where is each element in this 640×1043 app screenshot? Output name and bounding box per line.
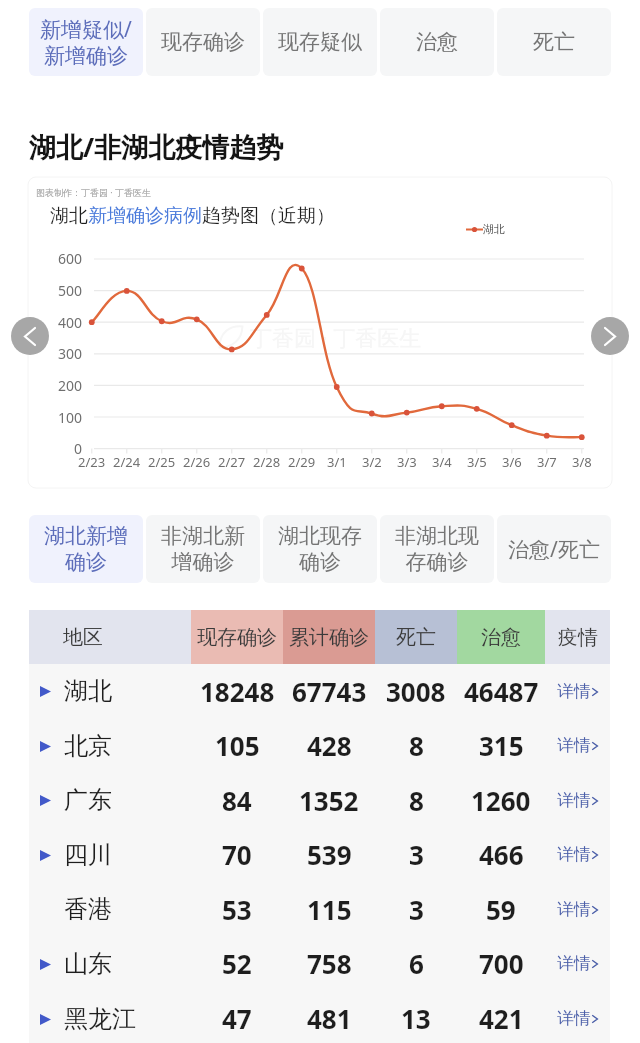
- button[interactable]: 现存疑似: [263, 8, 377, 76]
- staticText: 治愈/死亡: [508, 535, 600, 564]
- staticText: 疫情: [558, 625, 598, 650]
- staticText: 黑龙江: [64, 1004, 136, 1034]
- staticText: 3/1: [327, 453, 347, 471]
- staticText: 治愈: [416, 29, 458, 55]
- button[interactable]: 非湖北现 存确诊: [380, 515, 494, 583]
- staticText: 山东: [64, 949, 112, 979]
- staticText: 2/23: [78, 453, 106, 471]
- button[interactable]: 死亡: [497, 8, 611, 76]
- staticText: 2/25: [148, 453, 176, 471]
- staticText: 6: [409, 946, 424, 981]
- staticText: 3/7: [537, 453, 557, 471]
- button[interactable]: 黑龙江: [29, 991, 610, 1043]
- staticText: 3/4: [432, 453, 452, 471]
- staticText: 广东: [64, 785, 112, 815]
- button[interactable]: 湖北现存 确诊: [263, 515, 377, 583]
- button[interactable]: 香港: [29, 882, 610, 936]
- staticText: 46487: [464, 674, 539, 709]
- button[interactable]: 治愈: [380, 8, 494, 76]
- staticText: 758: [307, 946, 352, 981]
- staticText: 详情: [557, 1008, 591, 1029]
- staticText: 详情: [557, 899, 591, 920]
- staticText: 18248: [200, 674, 275, 709]
- staticText: 湖北现存 确诊: [278, 523, 362, 576]
- staticText: 香港: [64, 894, 112, 924]
- staticText: 湖北新增确诊病例趋势图（近期）: [50, 204, 335, 228]
- staticText: 1352: [299, 783, 359, 818]
- button[interactable]: 治愈/死亡: [497, 515, 611, 583]
- staticText: 四川: [64, 840, 112, 870]
- button[interactable]: 山东: [29, 936, 610, 991]
- staticText: 13: [401, 1001, 431, 1036]
- staticText: 现存疑似: [278, 29, 362, 55]
- staticText: 详情: [557, 790, 591, 811]
- staticText: 428: [307, 728, 352, 763]
- staticText: 315: [479, 728, 524, 763]
- button[interactable]: 湖北: [29, 664, 610, 718]
- staticText: 详情: [557, 953, 591, 974]
- staticText: 300: [58, 344, 83, 363]
- staticText: 421: [479, 1001, 524, 1036]
- button[interactable]: 北京: [29, 718, 610, 773]
- staticText: 丁香园 · 丁香医生: [250, 322, 422, 352]
- staticText: 53: [222, 892, 252, 927]
- staticText: 2/29: [288, 453, 316, 471]
- staticText: 地区: [63, 625, 103, 650]
- staticText: 105: [215, 728, 260, 763]
- staticText: 600: [58, 249, 83, 268]
- staticText: 115: [307, 892, 352, 927]
- staticText: 0: [74, 439, 83, 458]
- staticText: 北京: [64, 731, 112, 761]
- staticText: 8: [409, 783, 424, 818]
- staticText: 现存确诊: [197, 625, 277, 650]
- staticText: 100: [58, 408, 83, 427]
- staticText: 481: [307, 1001, 352, 1036]
- staticText: 400: [58, 313, 83, 332]
- staticText: 累计确诊: [289, 625, 369, 650]
- staticText: 详情: [557, 681, 591, 702]
- staticText: 2/28: [253, 453, 281, 471]
- staticText: 47: [222, 1001, 252, 1036]
- staticText: 8: [409, 728, 424, 763]
- staticText: 67743: [292, 674, 367, 709]
- button[interactable]: 四川: [29, 827, 610, 882]
- staticText: 466: [479, 837, 524, 872]
- button[interactable]: 湖北新增 确诊: [29, 515, 143, 583]
- staticText: 70: [222, 837, 252, 872]
- staticText: 详情: [557, 735, 591, 756]
- staticText: 湖北: [64, 676, 112, 706]
- staticText: 现存确诊: [161, 29, 245, 55]
- button[interactable]: 新增疑似/ 新增确诊: [29, 8, 143, 76]
- button[interactable]: 非湖北新 增确诊: [146, 515, 260, 583]
- staticText: 3/6: [502, 453, 522, 471]
- staticText: 500: [58, 281, 83, 300]
- staticText: 3/2: [362, 453, 382, 471]
- staticText: 非湖北新 增确诊: [161, 523, 245, 576]
- staticText: 湖北/非湖北疫情趋势: [29, 128, 284, 165]
- button[interactable]: 现存确诊: [146, 8, 260, 76]
- staticText: 200: [58, 376, 83, 395]
- staticText: 3: [409, 837, 424, 872]
- button[interactable]: Next chart: [591, 317, 629, 355]
- staticText: 59: [486, 892, 516, 927]
- staticText: 非湖北现 存确诊: [395, 523, 479, 576]
- staticText: 1260: [471, 783, 531, 818]
- staticText: 治愈: [481, 625, 521, 650]
- button[interactable]: 广东: [29, 773, 610, 827]
- staticText: 湖北: [483, 222, 505, 236]
- staticText: 3/8: [572, 453, 592, 471]
- staticText: 84: [222, 783, 252, 818]
- staticText: 2/26: [183, 453, 211, 471]
- staticText: 详情: [557, 844, 591, 865]
- staticText: 图表制作：丁香园 · 丁香医生: [36, 186, 152, 198]
- staticText: 死亡: [396, 625, 436, 650]
- staticText: 新增疑似/ 新增确诊: [40, 15, 132, 70]
- staticText: 3008: [386, 674, 446, 709]
- staticText: 52: [222, 946, 252, 981]
- staticText: 539: [307, 837, 352, 872]
- staticText: 死亡: [533, 29, 575, 55]
- staticText: 3: [409, 892, 424, 927]
- staticText: 3/3: [397, 453, 417, 471]
- staticText: 2/24: [113, 453, 141, 471]
- button[interactable]: Previous chart: [11, 317, 49, 355]
